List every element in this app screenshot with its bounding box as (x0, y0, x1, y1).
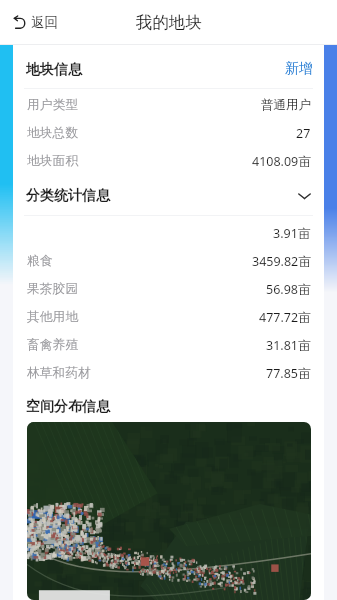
staticText: 我的地块 (136, 12, 202, 33)
staticText: 56.98亩 (266, 281, 311, 298)
staticText: 普通用户 (261, 97, 311, 113)
button[interactable]: 分类统计信息 (13, 175, 324, 215)
staticText: 地块信息 (26, 61, 82, 79)
button[interactable]: 新增 (283, 54, 315, 80)
staticText: 地块总数 (27, 125, 79, 141)
staticText: 空间分布信息 (26, 398, 110, 416)
staticText: 分类统计信息 (26, 187, 110, 205)
staticText: 新增 (285, 60, 313, 78)
staticText: 31.81亩 (266, 337, 311, 354)
staticText: 返回 (31, 14, 58, 31)
staticText: 77.85亩 (266, 365, 311, 382)
staticText: 477.72亩 (259, 309, 311, 326)
staticText: 27 (296, 125, 311, 142)
staticText: 林草和药材 (27, 365, 91, 381)
staticText: 粮食 (27, 253, 53, 269)
staticText: 3.91亩 (273, 225, 311, 242)
staticText: 地块面积 (27, 153, 79, 169)
staticText: 用户类型 (27, 97, 79, 113)
staticText: 3459.82亩 (252, 253, 311, 270)
staticText: 果茶胶园 (27, 281, 79, 297)
staticText: 4108.09亩 (252, 153, 311, 170)
button[interactable]: 返回 (9, 9, 62, 36)
staticText: 畜禽养殖 (27, 337, 79, 353)
staticText: 其他用地 (27, 309, 79, 325)
